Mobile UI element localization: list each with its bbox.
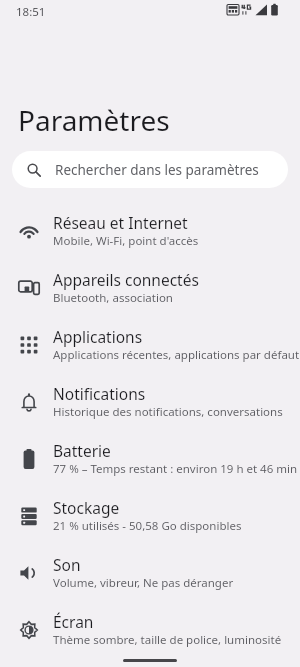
- button[interactable]: Applications: [0, 316, 300, 373]
- button[interactable]: Stockage: [0, 487, 300, 544]
- staticText: Appareils connectés: [53, 269, 199, 290]
- staticText: Son: [53, 554, 81, 575]
- staticText: Bluetooth, association: [53, 290, 173, 306]
- staticText: 77 % – Temps restant : environ 19 h et 4…: [53, 461, 298, 477]
- button[interactable]: Écran: [0, 601, 300, 658]
- staticText: Paramètres: [18, 101, 170, 139]
- staticText: Rechercher dans les paramètres: [55, 161, 259, 179]
- staticText: Volume, vibreur, Ne pas déranger: [53, 575, 234, 591]
- button[interactable]: Appareils connectés: [0, 259, 300, 316]
- button[interactable]: Réseau et Internet: [0, 202, 300, 259]
- button[interactable]: Rechercher dans les paramètres: [12, 151, 288, 188]
- staticText: Stockage: [53, 497, 120, 518]
- staticText: Thème sombre, taille de police, luminosi…: [53, 632, 282, 648]
- staticText: Écran: [53, 611, 94, 632]
- staticText: Mobile, Wi-Fi, point d'accès: [53, 233, 199, 249]
- button[interactable]: Notifications: [0, 373, 300, 430]
- staticText: Notifications: [53, 383, 146, 404]
- staticText: Applications récentes, applications par …: [53, 347, 300, 363]
- other: Home: [123, 659, 177, 662]
- staticText: Applications: [53, 326, 143, 347]
- button[interactable]: Son: [0, 544, 300, 601]
- staticText: Batterie: [53, 440, 111, 461]
- button[interactable]: Batterie: [0, 430, 300, 487]
- staticText: Historique des notifications, conversati…: [53, 404, 283, 420]
- staticText: Réseau et Internet: [53, 212, 188, 233]
- staticText: 18:51: [16, 4, 46, 20]
- staticText: 21 % utilisés - 50,58 Go disponibles: [53, 518, 242, 534]
